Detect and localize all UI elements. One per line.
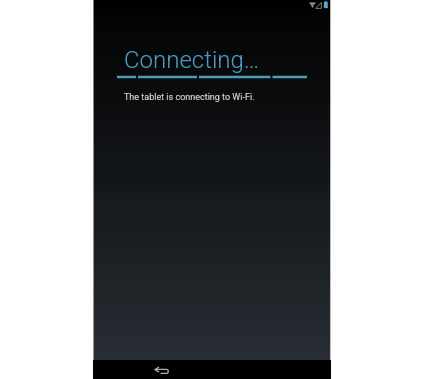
staticText: The tablet is connecting to Wi-Fi. — [124, 92, 255, 103]
button[interactable]: Back — [141, 360, 181, 379]
staticText: Connecting… — [124, 46, 260, 74]
